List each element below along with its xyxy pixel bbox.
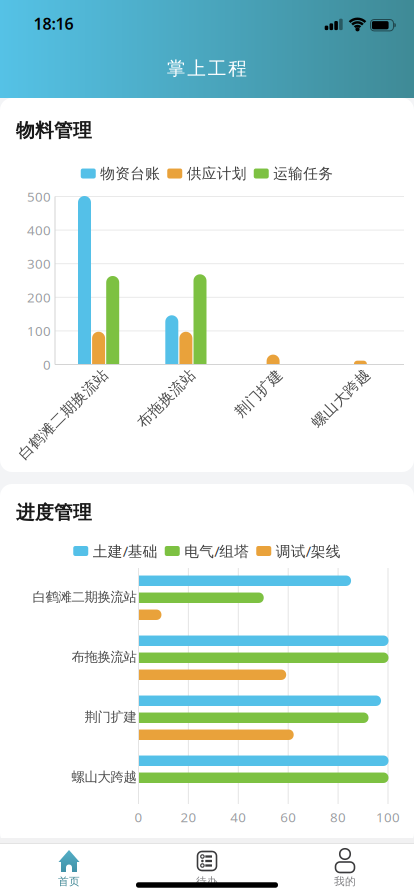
button[interactable]: 我的	[276, 844, 414, 896]
button[interactable]: 供应计划	[167, 164, 247, 182]
staticText: 布拖换流站	[71, 649, 136, 665]
staticText: 100	[376, 808, 400, 826]
staticText: 首页	[58, 875, 80, 888]
staticText: 荆门扩建	[229, 384, 289, 402]
staticText: 我的	[334, 875, 356, 888]
staticText: 18:16	[33, 13, 73, 34]
staticText: 500	[27, 188, 51, 205]
staticText: 300	[27, 255, 51, 272]
button[interactable]: 土建/基础	[73, 541, 158, 561]
staticText: 物资台账	[100, 164, 160, 182]
staticText: 60	[280, 808, 296, 826]
staticText: 20	[180, 808, 196, 826]
staticText: 0	[43, 356, 51, 373]
staticText: 0	[134, 808, 142, 826]
button[interactable]: 首页	[0, 844, 138, 896]
button[interactable]: 待办	[138, 844, 276, 896]
staticText: 待办	[196, 875, 218, 888]
button[interactable]: 物资台账	[81, 164, 160, 182]
button[interactable]: 运输任务	[254, 164, 333, 182]
staticText: 螺山大跨越	[71, 769, 136, 785]
staticText: 400	[27, 221, 51, 239]
staticText: 40	[230, 808, 246, 826]
staticText: 掌上工程	[167, 57, 247, 80]
button[interactable]: 电气/组塔	[165, 541, 249, 561]
staticText: 100	[27, 322, 51, 340]
staticText: 调试/架线	[276, 541, 341, 561]
staticText: 土建/基础	[93, 541, 158, 561]
staticText: 物料管理	[16, 119, 92, 142]
staticText: 供应计划	[187, 164, 247, 182]
staticText: 运输任务	[273, 164, 333, 182]
staticText: 布拖换流站	[129, 390, 204, 408]
staticText: 荆门扩建	[84, 709, 136, 725]
button[interactable]: 调试/架线	[256, 541, 341, 561]
staticText: 进度管理	[16, 501, 92, 524]
staticText: 白鹤滩二期换流站	[3, 405, 123, 423]
staticText: 白鹤滩二期换流站	[32, 589, 136, 605]
staticText: 电气/组塔	[184, 541, 249, 561]
staticText: 200	[27, 288, 51, 306]
staticText: 螺山大跨越	[303, 390, 378, 408]
staticText: 80	[330, 808, 346, 826]
